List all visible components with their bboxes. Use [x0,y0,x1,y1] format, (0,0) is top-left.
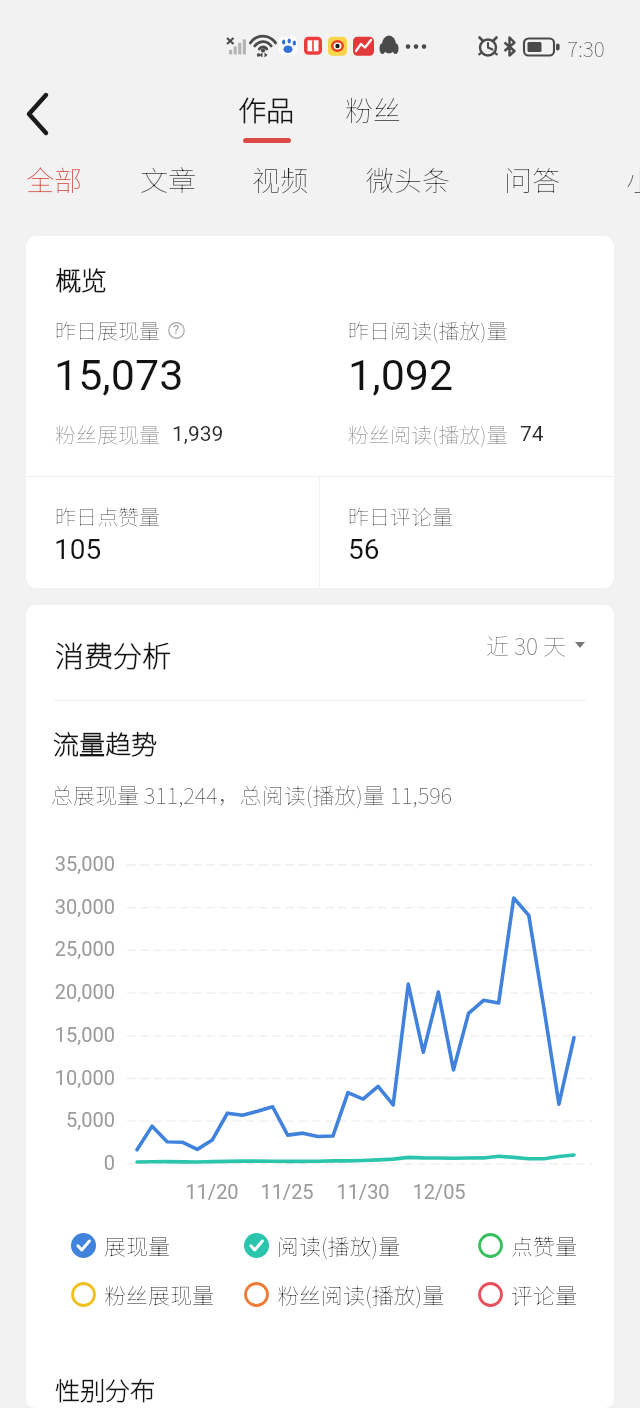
button[interactable]: 小 [626,159,640,200]
staticText: 粉丝阅读(播放)量 [277,1278,445,1310]
staticText: 全部 [26,159,83,200]
staticText: 问答 [504,159,561,200]
button[interactable]: 粉丝展现量 [71,1278,215,1310]
staticText: 作品 [238,89,295,130]
staticText: 20,000 [26,980,115,1003]
staticText: 11/20 [177,1180,247,1203]
button[interactable]: 粉丝 [345,89,402,130]
staticText: 总展现量 311,244，总阅读(播放)量 11,596 [51,778,453,810]
button[interactable]: 近 30 天 [478,620,593,669]
staticText: 阅读(播放)量 [277,1229,401,1261]
button[interactable]: 文章 [140,159,197,200]
staticText: 昨日点赞量 [55,501,160,531]
button[interactable]: Back [15,94,59,138]
staticText: 35,000 [26,852,115,875]
staticText: 0 [26,1151,115,1174]
staticText: 7:30 [567,33,605,63]
staticText: 展现量 [104,1229,171,1261]
staticText: 近 30 天 [486,628,567,661]
button[interactable]: 作品 [238,89,295,143]
button[interactable]: 视频 [252,159,309,200]
staticText: 粉丝展现量 [104,1278,215,1310]
staticText: 微头条 [366,159,451,200]
staticText: 12/05 [404,1180,474,1203]
staticText: 昨日评论量 [348,501,453,531]
staticText: ? [173,322,180,337]
staticText: 11/30 [328,1180,398,1203]
staticText: 小 [626,159,640,200]
staticText: 概览 [55,260,108,298]
button[interactable]: More info [168,322,185,339]
staticText: 粉丝展现量 [55,419,160,449]
staticText: 昨日展现量 [55,315,160,345]
staticText: 5,000 [26,1108,115,1131]
staticText: 105 [54,533,102,566]
staticText: 74 [520,422,544,447]
staticText: 文章 [140,159,197,200]
staticText: 流量趋势 [53,724,158,762]
staticText: 点赞量 [511,1229,578,1261]
staticText: 11/25 [252,1180,322,1203]
staticText: 25,000 [26,937,115,960]
staticText: 昨日阅读(播放)量 [348,315,508,345]
staticText: 10,000 [26,1066,115,1089]
staticText: 1,939 [172,422,224,447]
staticText: 评论量 [511,1278,578,1310]
button[interactable]: 微头条 [366,159,451,200]
staticText: 56 [348,533,380,566]
button[interactable]: 问答 [504,159,561,200]
staticText: 性别分布 [55,1371,156,1407]
staticText: 粉丝阅读(播放)量 [348,419,508,449]
staticText: 视频 [252,159,309,200]
staticText: 1,092 [348,350,454,400]
staticText: 30,000 [26,895,115,918]
staticText: 消费分析 [55,633,172,675]
button[interactable]: 展现量 [71,1229,171,1261]
button[interactable]: 全部 [26,159,83,200]
button[interactable]: 点赞量 [478,1229,578,1261]
staticText: 15,000 [26,1023,115,1046]
button[interactable]: 评论量 [478,1278,578,1310]
staticText: 15,073 [54,350,184,400]
button[interactable]: 阅读(播放)量 [244,1229,401,1261]
staticText: 粉丝 [345,89,402,130]
button[interactable]: 粉丝阅读(播放)量 [244,1278,445,1310]
